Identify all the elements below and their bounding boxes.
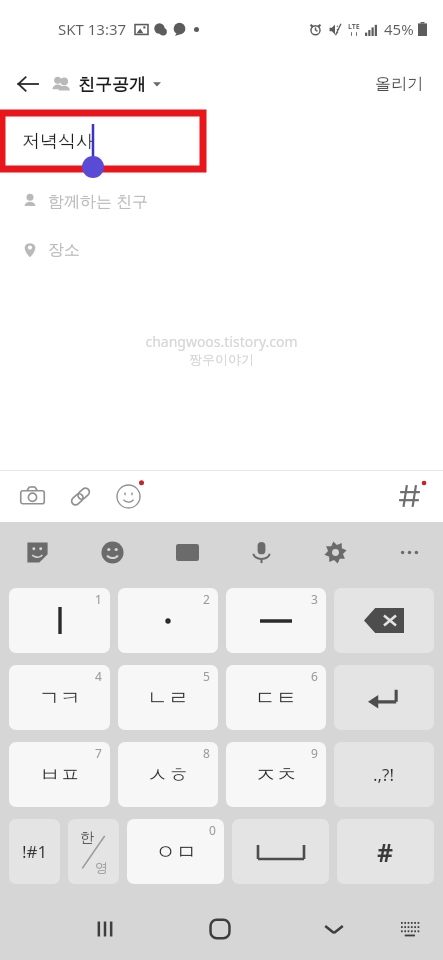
staticText: 45%	[384, 19, 414, 39]
button[interactable]: 함께하는 친구	[0, 184, 443, 218]
staticText: changwoos.tistory.com	[145, 332, 298, 351]
button[interactable]: HORZ	[226, 588, 326, 653]
staticText: 0	[209, 822, 216, 838]
button[interactable]: Back	[12, 66, 165, 102]
button[interactable]: ㅈㅊ	[226, 742, 326, 807]
staticText: .,?!	[373, 763, 395, 786]
button[interactable]: ㅇㅁ	[127, 819, 224, 884]
staticText: ㄴㄹ	[147, 685, 189, 711]
staticText: 친구공개	[78, 74, 146, 95]
button[interactable]: !#1	[9, 819, 60, 884]
staticText: 함께하는 친구	[48, 190, 149, 212]
staticText: SKT 13:37	[58, 19, 127, 39]
button[interactable]: GIF	[168, 533, 207, 572]
staticText: ㅇㅁ	[155, 839, 197, 865]
button[interactable]: ㄴㄹ	[118, 665, 218, 730]
staticText: ㅂㅍ	[39, 762, 81, 788]
staticText: 4	[95, 668, 102, 684]
staticText: 3	[311, 591, 318, 607]
button[interactable]: Recent apps	[82, 906, 128, 952]
button[interactable]: 올리기	[365, 66, 433, 102]
button[interactable]: ㅂㅍ	[9, 742, 110, 807]
staticText: 7	[95, 745, 102, 761]
staticText: #	[377, 835, 394, 869]
staticText: !#1	[22, 840, 48, 863]
button[interactable]: Emoji	[93, 533, 132, 572]
staticText: 6	[311, 668, 318, 684]
staticText: ㄷㅌ	[255, 685, 297, 711]
staticText: 영	[95, 859, 108, 875]
button[interactable]: VERT	[9, 588, 110, 653]
staticText: 한	[80, 829, 94, 847]
button[interactable]	[0, 110, 443, 176]
button[interactable]: Link	[61, 477, 100, 516]
button[interactable]: DOT	[118, 588, 218, 653]
staticText: 저녁식사	[22, 130, 94, 153]
staticText: 올리기	[375, 74, 423, 94]
button[interactable]: HANYEONG	[68, 819, 119, 884]
button[interactable]: .,?!	[334, 742, 434, 807]
button[interactable]: Voice input	[242, 533, 281, 572]
staticText: ㅅㅎ	[147, 762, 189, 788]
button[interactable]: Home	[197, 906, 243, 952]
button[interactable]: BACKSPACE	[334, 588, 434, 653]
button[interactable]: Hashtag	[391, 477, 429, 515]
button[interactable]: Hide keyboard	[311, 906, 357, 952]
staticText: LTE	[348, 22, 360, 32]
staticText: 짱우이야기	[189, 351, 254, 367]
staticText: 5	[203, 668, 210, 684]
button[interactable]: Stickers	[18, 533, 57, 572]
button[interactable]: 장소	[0, 234, 443, 266]
button[interactable]: Change keyboard	[391, 912, 431, 946]
button[interactable]: Settings	[316, 533, 355, 572]
button[interactable]: Camera	[12, 476, 53, 517]
staticText: 1	[95, 591, 102, 607]
button[interactable]: ㄷㅌ	[226, 665, 326, 730]
staticText: 장소	[48, 240, 80, 260]
staticText: 2	[203, 591, 210, 607]
staticText: 8	[203, 745, 210, 761]
button[interactable]: HASH	[337, 819, 434, 884]
button[interactable]: More options	[390, 533, 429, 572]
button[interactable]: Emoji	[108, 476, 149, 517]
button[interactable]: ㅅㅎ	[118, 742, 218, 807]
other: Back	[16, 72, 40, 96]
button[interactable]: SPACE	[232, 819, 329, 884]
button[interactable]: ENTER	[334, 665, 434, 730]
staticText: ㅈㅊ	[255, 762, 297, 788]
button[interactable]: ㄱㅋ	[9, 665, 110, 730]
staticText: ㄱㅋ	[39, 685, 81, 711]
staticText: 9	[311, 745, 318, 761]
